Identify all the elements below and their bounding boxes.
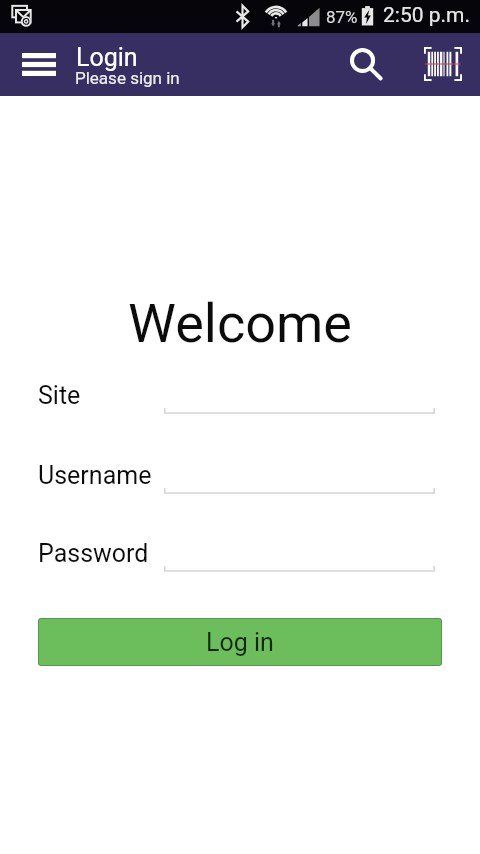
staticText: Password xyxy=(38,539,149,568)
staticText: Site xyxy=(38,381,81,410)
button[interactable]: Username input xyxy=(164,463,435,494)
staticText: Please sign in xyxy=(75,68,180,88)
staticText: Login xyxy=(76,43,138,72)
staticText: 87% xyxy=(326,7,358,27)
button[interactable]: Menu xyxy=(8,33,70,95)
button[interactable]: Search xyxy=(335,33,397,95)
button[interactable]: Scan barcode xyxy=(412,33,474,95)
staticText: Welcome xyxy=(0,292,480,355)
staticText: Log in xyxy=(206,628,274,657)
staticText: 2:50 p.m. xyxy=(383,3,470,28)
button[interactable]: Password input xyxy=(164,541,435,572)
button[interactable]: Site input xyxy=(164,383,435,414)
staticText: Username xyxy=(38,461,152,490)
button[interactable]: Log in xyxy=(38,618,442,666)
